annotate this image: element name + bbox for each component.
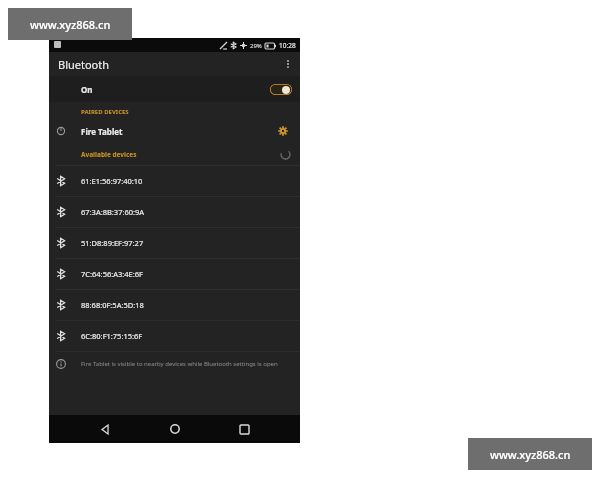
staticText: 10:28 xyxy=(279,41,296,50)
staticText: Bluetooth xyxy=(58,57,110,72)
staticText: 6C:80:F1:75:15:6F xyxy=(81,331,143,341)
button[interactable]: 51:D8:89:EF:97:27 xyxy=(49,228,300,258)
button[interactable]: 67:3A:8B:37:60:9A xyxy=(49,197,300,227)
button[interactable]: Back xyxy=(91,415,119,443)
staticText: www.xyz868.cn xyxy=(490,447,571,462)
button[interactable]: Device settings xyxy=(274,122,292,140)
staticText: Fire Tablet is visible to nearby devices… xyxy=(81,360,278,368)
staticText: Fire Tablet xyxy=(81,126,123,137)
button[interactable]: 88:68:0F:5A:5D:18 xyxy=(49,290,300,320)
button[interactable]: 61:E1:56:97:40:10 xyxy=(49,166,300,196)
staticText: 88:68:0F:5A:5D:18 xyxy=(81,300,144,310)
staticText: PAIRED DEVICES xyxy=(81,108,129,116)
button[interactable]: 6C:80:F1:75:15:6F xyxy=(49,321,300,351)
staticText: 67:3A:8B:37:60:9A xyxy=(81,207,145,217)
staticText: 7C:64:56:A3:4E:6F xyxy=(81,269,143,279)
staticText: 61:E1:56:97:40:10 xyxy=(81,176,143,186)
button[interactable]: 7C:64:56:A3:4E:6F xyxy=(49,259,300,289)
staticText: On xyxy=(81,84,93,95)
staticText: Available devices xyxy=(81,150,137,159)
staticText: 29% xyxy=(250,42,262,50)
button[interactable]: Recent apps xyxy=(230,415,258,443)
button[interactable]: Fire Tablet xyxy=(49,119,300,143)
button[interactable]: More options xyxy=(276,52,300,76)
staticText: 51:D8:89:EF:97:27 xyxy=(81,238,144,248)
staticText: www.xyz868.cn xyxy=(30,17,111,32)
button[interactable]: Home xyxy=(161,415,189,443)
button[interactable]: On xyxy=(49,76,300,102)
